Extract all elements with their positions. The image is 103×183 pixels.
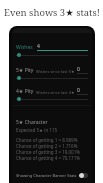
staticText: 4★ Pity — [16, 88, 34, 95]
staticText: Chance of getting 4 = 70.171% — [16, 155, 80, 161]
staticText: Chance of getting 3 = 19.001% — [16, 149, 80, 155]
staticText: Wishes since last 5★ — [36, 69, 75, 74]
staticText: 0 — [77, 87, 80, 94]
staticText: 5★ Character — [16, 119, 48, 126]
staticText: Even shows 3★ stats! — [4, 6, 100, 19]
staticText: 5★ Pity — [16, 67, 34, 74]
button[interactable]: Showing Character Banner Stats — [16, 173, 88, 178]
staticText: Expected 5★ in 115 — [16, 127, 58, 133]
staticText: 0 — [77, 66, 80, 73]
staticText: Wishes since last 4★ — [36, 90, 75, 95]
staticText: 4 — [37, 43, 40, 50]
staticText: Chance of getting 2 = 1.716% — [16, 143, 78, 149]
staticText: Chance of getting 1 = 8.989% — [16, 137, 78, 143]
staticText: Showing Character Banner Stats — [16, 173, 77, 178]
button[interactable] — [17, 97, 21, 101]
staticText: Wishes — [16, 44, 33, 51]
button[interactable] — [17, 76, 21, 80]
button[interactable] — [17, 53, 21, 57]
